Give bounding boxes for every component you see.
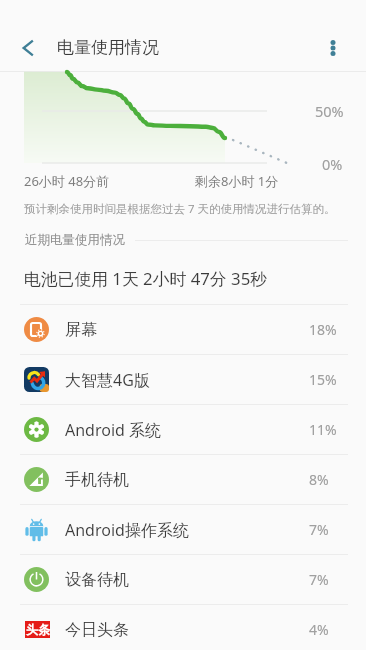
staticText: Android操作系统 [65, 519, 189, 541]
staticText: 手机待机 [65, 470, 129, 490]
staticText: 26小时 48分前 [24, 172, 110, 190]
staticText: 11% [309, 420, 337, 439]
button[interactable]: Android 系统 [0, 405, 366, 454]
staticText: 预计剩余使用时间是根据您过去 7 天的使用情况进行估算的。 [24, 201, 336, 217]
staticText: 50% [315, 101, 344, 121]
button[interactable]: 设备待机 [0, 555, 366, 604]
staticText: 屏幕 [65, 320, 97, 340]
button[interactable]: 大智慧4G版 [0, 355, 366, 404]
button[interactable]: More options [313, 28, 353, 68]
staticText: 头条 [26, 622, 50, 637]
staticText: 电池已使用 1天 2小时 47分 35秒 [24, 267, 268, 290]
staticText: 电量使用情况 [57, 37, 159, 58]
staticText: 近期电量使用情况 [25, 232, 125, 248]
staticText: 18% [309, 320, 337, 339]
staticText: 大智慧4G版 [65, 369, 150, 391]
staticText: 7% [309, 520, 329, 539]
button[interactable]: 手机待机 [0, 455, 366, 504]
staticText: 7% [309, 570, 329, 589]
staticText: Android 系统 [65, 419, 162, 441]
staticText: 15% [309, 370, 337, 389]
button[interactable]: 头条 [0, 605, 366, 650]
staticText: 0% [322, 154, 343, 174]
button[interactable]: Back [8, 28, 48, 68]
button[interactable]: Android操作系统 [0, 505, 366, 554]
staticText: 8% [309, 470, 329, 489]
staticText: 设备待机 [65, 570, 129, 590]
staticText: 剩余8小时 1分 [195, 172, 279, 190]
staticText: 今日头条 [65, 620, 129, 640]
staticText: 4% [309, 620, 329, 639]
button[interactable]: 屏幕 [0, 305, 366, 354]
